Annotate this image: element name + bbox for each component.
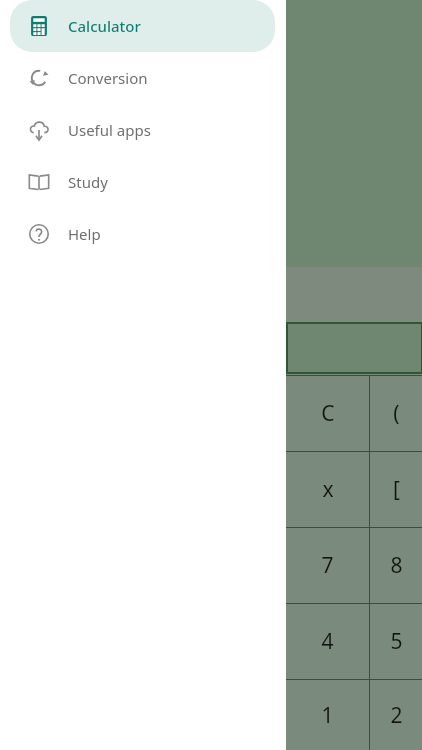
button[interactable]: (: [370, 376, 422, 451]
button[interactable]: Calculator: [10, 0, 275, 52]
button[interactable]: [: [370, 452, 422, 527]
staticText: C: [321, 399, 335, 428]
staticText: 5: [390, 627, 403, 656]
button[interactable]: 7: [286, 528, 369, 603]
staticText: 2: [390, 701, 403, 730]
button[interactable]: 4: [286, 604, 369, 679]
button[interactable]: 1: [286, 680, 369, 750]
staticText: 8: [390, 551, 403, 580]
staticText: 7: [321, 551, 334, 580]
button[interactable]: 8: [370, 528, 422, 603]
button[interactable]: Conversion: [10, 52, 275, 104]
staticText: Study: [68, 172, 108, 192]
button[interactable]: Help: [10, 208, 275, 260]
staticText: Help: [68, 224, 101, 244]
button[interactable]: C: [286, 376, 369, 451]
button[interactable]: Study: [10, 156, 275, 208]
button[interactable]: x: [286, 452, 369, 527]
staticText: [: [393, 475, 400, 504]
staticText: Useful apps: [68, 120, 151, 140]
staticText: Calculator: [68, 16, 141, 36]
staticText: (: [393, 399, 400, 428]
button[interactable]: [287, 323, 422, 373]
staticText: 1: [321, 701, 334, 730]
button[interactable]: Useful apps: [10, 104, 275, 156]
staticText: Conversion: [68, 68, 148, 88]
button[interactable]: 2: [370, 680, 422, 750]
staticText: x: [322, 475, 334, 504]
staticText: 4: [321, 627, 334, 656]
button[interactable]: 5: [370, 604, 422, 679]
